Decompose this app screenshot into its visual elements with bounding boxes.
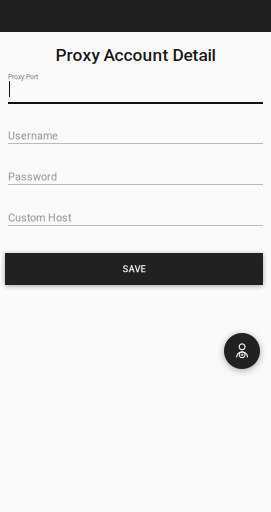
button[interactable]: SAVE — [5, 253, 263, 285]
staticText: Username — [8, 129, 58, 142]
button[interactable]: Username — [8, 125, 263, 144]
staticText: Custom Host — [8, 211, 71, 224]
button[interactable]: Custom Host — [8, 207, 263, 226]
staticText: Password — [8, 170, 57, 183]
staticText: Proxy Account Detail — [55, 45, 215, 65]
button[interactable]: Password — [8, 166, 263, 185]
button[interactable]: Add account — [224, 333, 260, 369]
button[interactable]: Proxy:Port — [8, 66, 263, 104]
staticText: SAVE — [122, 263, 145, 274]
staticText: Proxy:Port — [8, 73, 38, 81]
